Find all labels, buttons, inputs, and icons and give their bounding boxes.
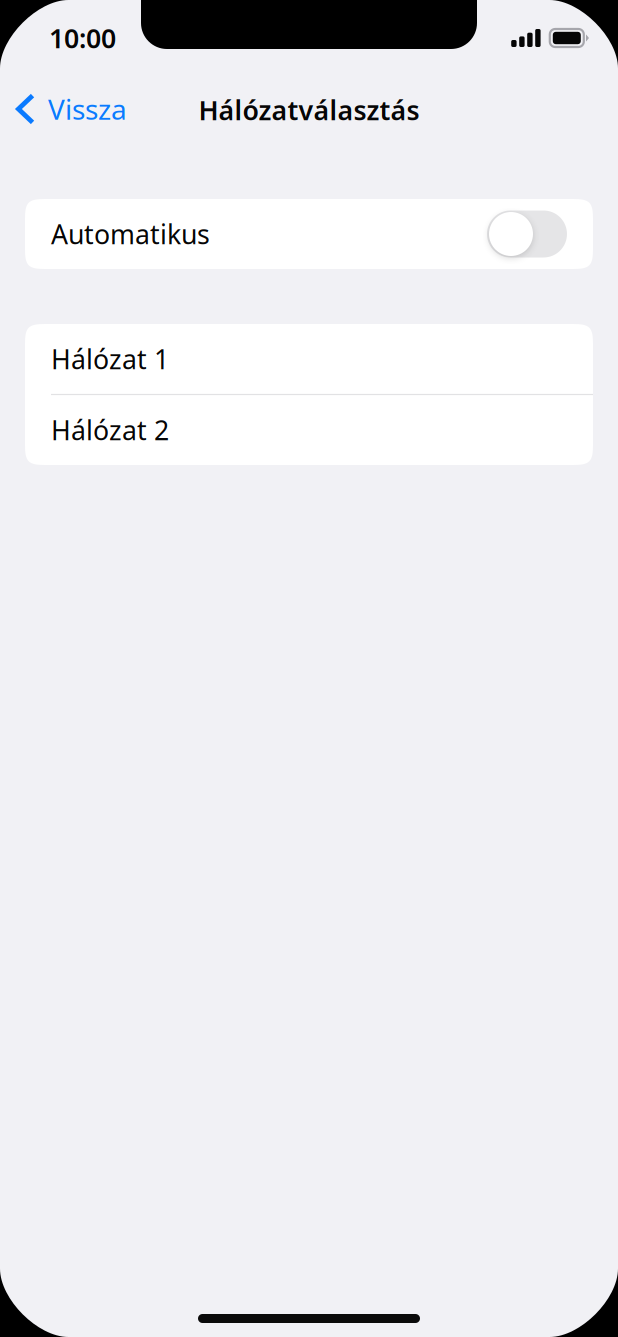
button[interactable]: Hálózat 2 xyxy=(25,395,593,465)
button[interactable]: Automatikus xyxy=(25,199,593,269)
staticText: Vissza xyxy=(48,90,127,128)
button[interactable]: Hálózat 1 xyxy=(25,324,593,394)
staticText: Hálózatválasztás xyxy=(198,92,419,128)
staticText: 10:00 xyxy=(49,20,116,56)
staticText: Automatikus xyxy=(51,216,210,252)
staticText: Hálózat 1 xyxy=(51,341,169,377)
staticText: Hálózat 2 xyxy=(51,412,169,448)
button[interactable]: Vissza xyxy=(0,78,139,144)
